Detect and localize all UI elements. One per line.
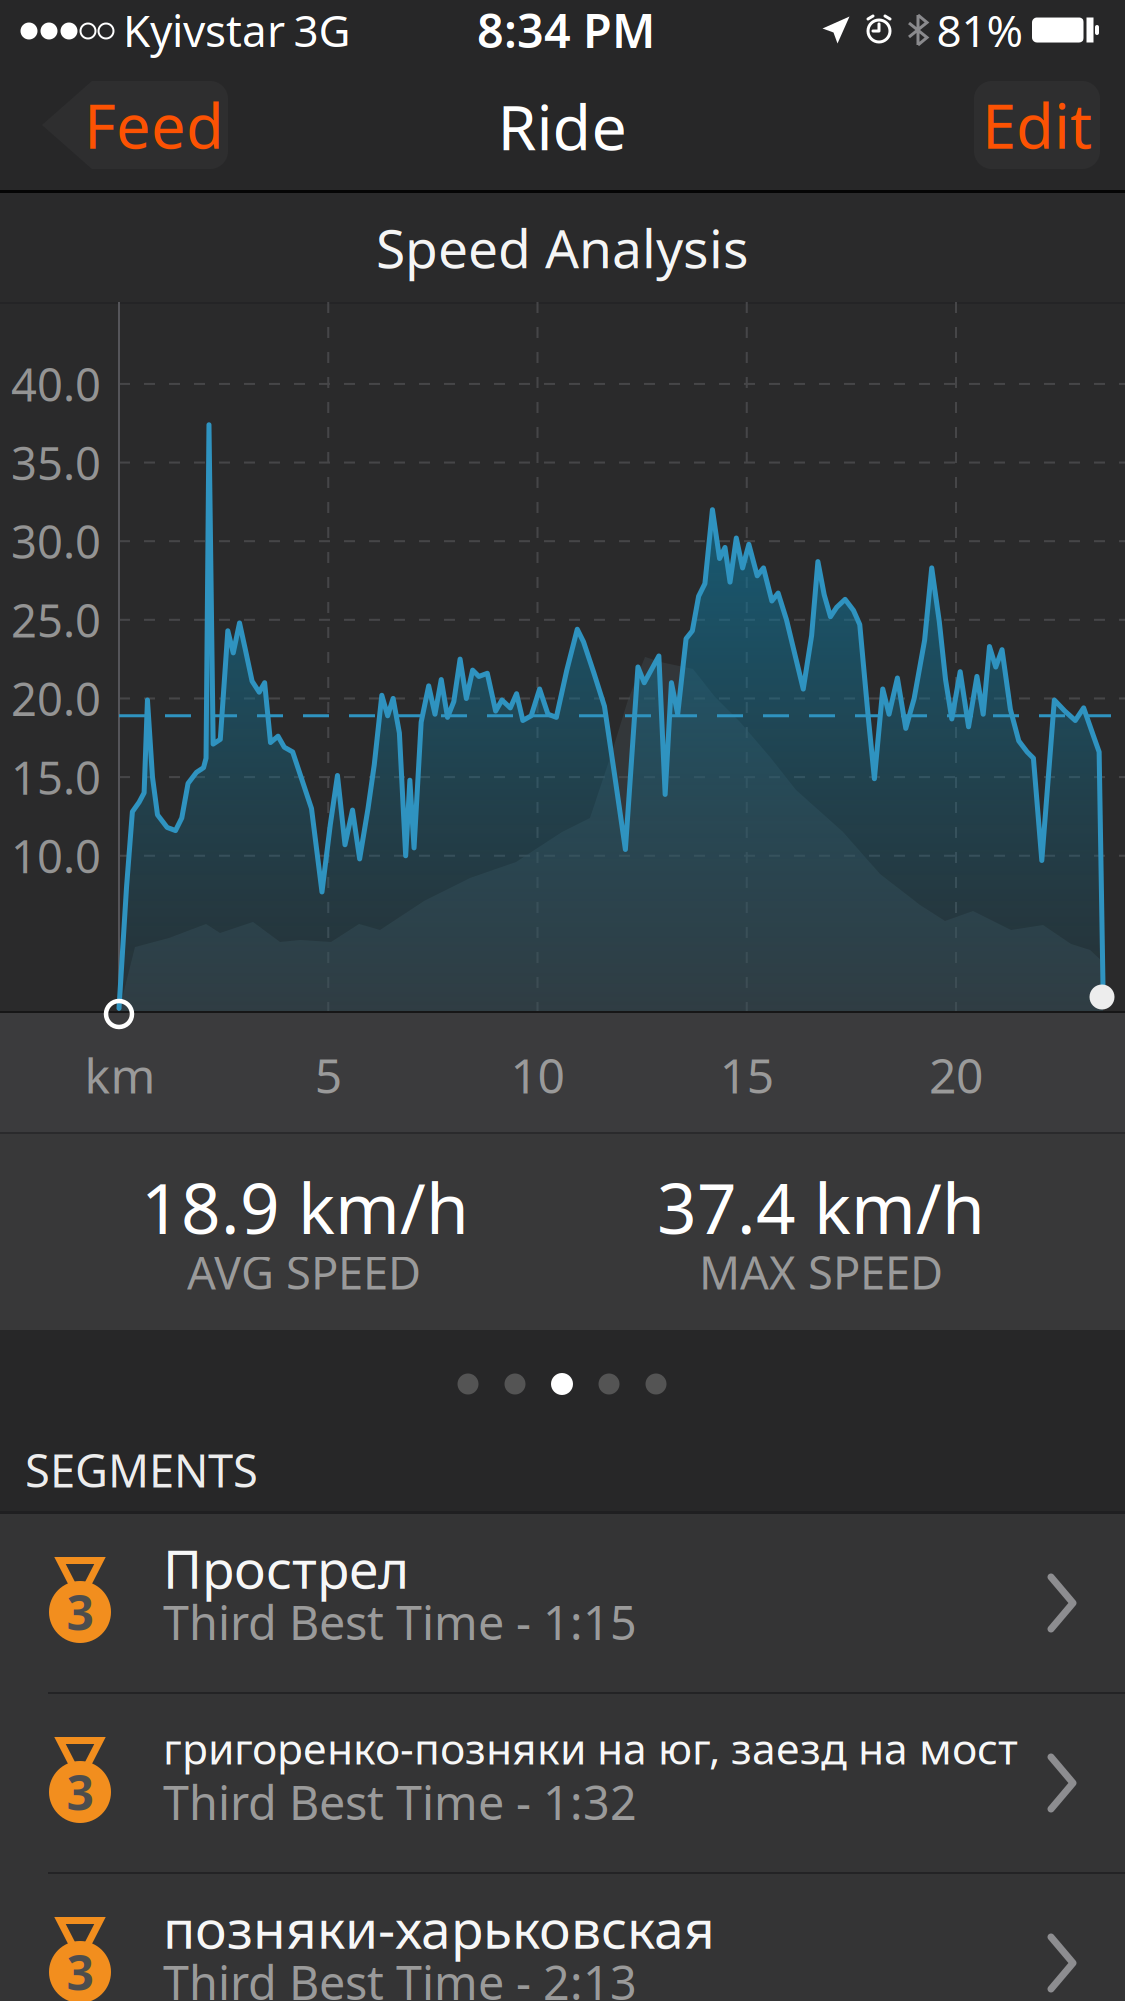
staticText: 3 [66, 1940, 93, 2001]
staticText: Kyivstar [123, 1, 285, 59]
staticText: 30.0 [11, 511, 101, 571]
staticText: 3 [66, 1760, 93, 1824]
staticText: Edit [982, 84, 1092, 166]
staticText: SEGMENTS [25, 1440, 258, 1500]
staticText: AVG SPEED [187, 1242, 421, 1302]
staticText: km [84, 1043, 155, 1107]
staticText: Прострел [163, 1533, 409, 1603]
staticText: 40.0 [11, 354, 101, 414]
staticText: 15.0 [11, 747, 101, 807]
staticText: 81% [936, 1, 1023, 59]
button[interactable]: 3 [0, 1514, 1125, 1692]
staticText: 8:34 PM [477, 0, 655, 61]
staticText: 10 [510, 1043, 564, 1107]
staticText: Third Best Time - 1:32 [163, 1771, 637, 1833]
staticText: Ride [497, 84, 626, 168]
staticText: 3G [293, 1, 350, 59]
staticText: 18.9 km/h [141, 1161, 469, 1253]
staticText: 20.0 [11, 668, 101, 729]
staticText: 15 [720, 1043, 774, 1107]
staticText: 10.0 [11, 826, 101, 886]
staticText: Third Best Time - 2:13 [163, 1951, 637, 2001]
staticText: Speed Analysis [376, 212, 749, 283]
staticText: 35.0 [11, 432, 101, 493]
staticText: MAX SPEED [699, 1242, 943, 1302]
staticText: 37.4 km/h [657, 1161, 985, 1253]
staticText: 25.0 [11, 590, 101, 650]
staticText: Feed [84, 84, 224, 166]
button[interactable]: Edit [974, 81, 1100, 169]
button[interactable]: 3 [0, 1874, 1125, 2001]
button[interactable]: Feed [16, 81, 228, 169]
staticText: 20 [929, 1043, 983, 1107]
staticText: Third Best Time - 1:15 [163, 1591, 637, 1653]
staticText: григоренко-позняки на юг, заезд на мост [163, 1720, 1018, 1776]
button[interactable]: 3 [0, 1694, 1125, 1872]
staticText: позняки-харьковская [163, 1893, 715, 1963]
staticText: 3 [66, 1580, 93, 1644]
staticText: 5 [315, 1043, 342, 1107]
